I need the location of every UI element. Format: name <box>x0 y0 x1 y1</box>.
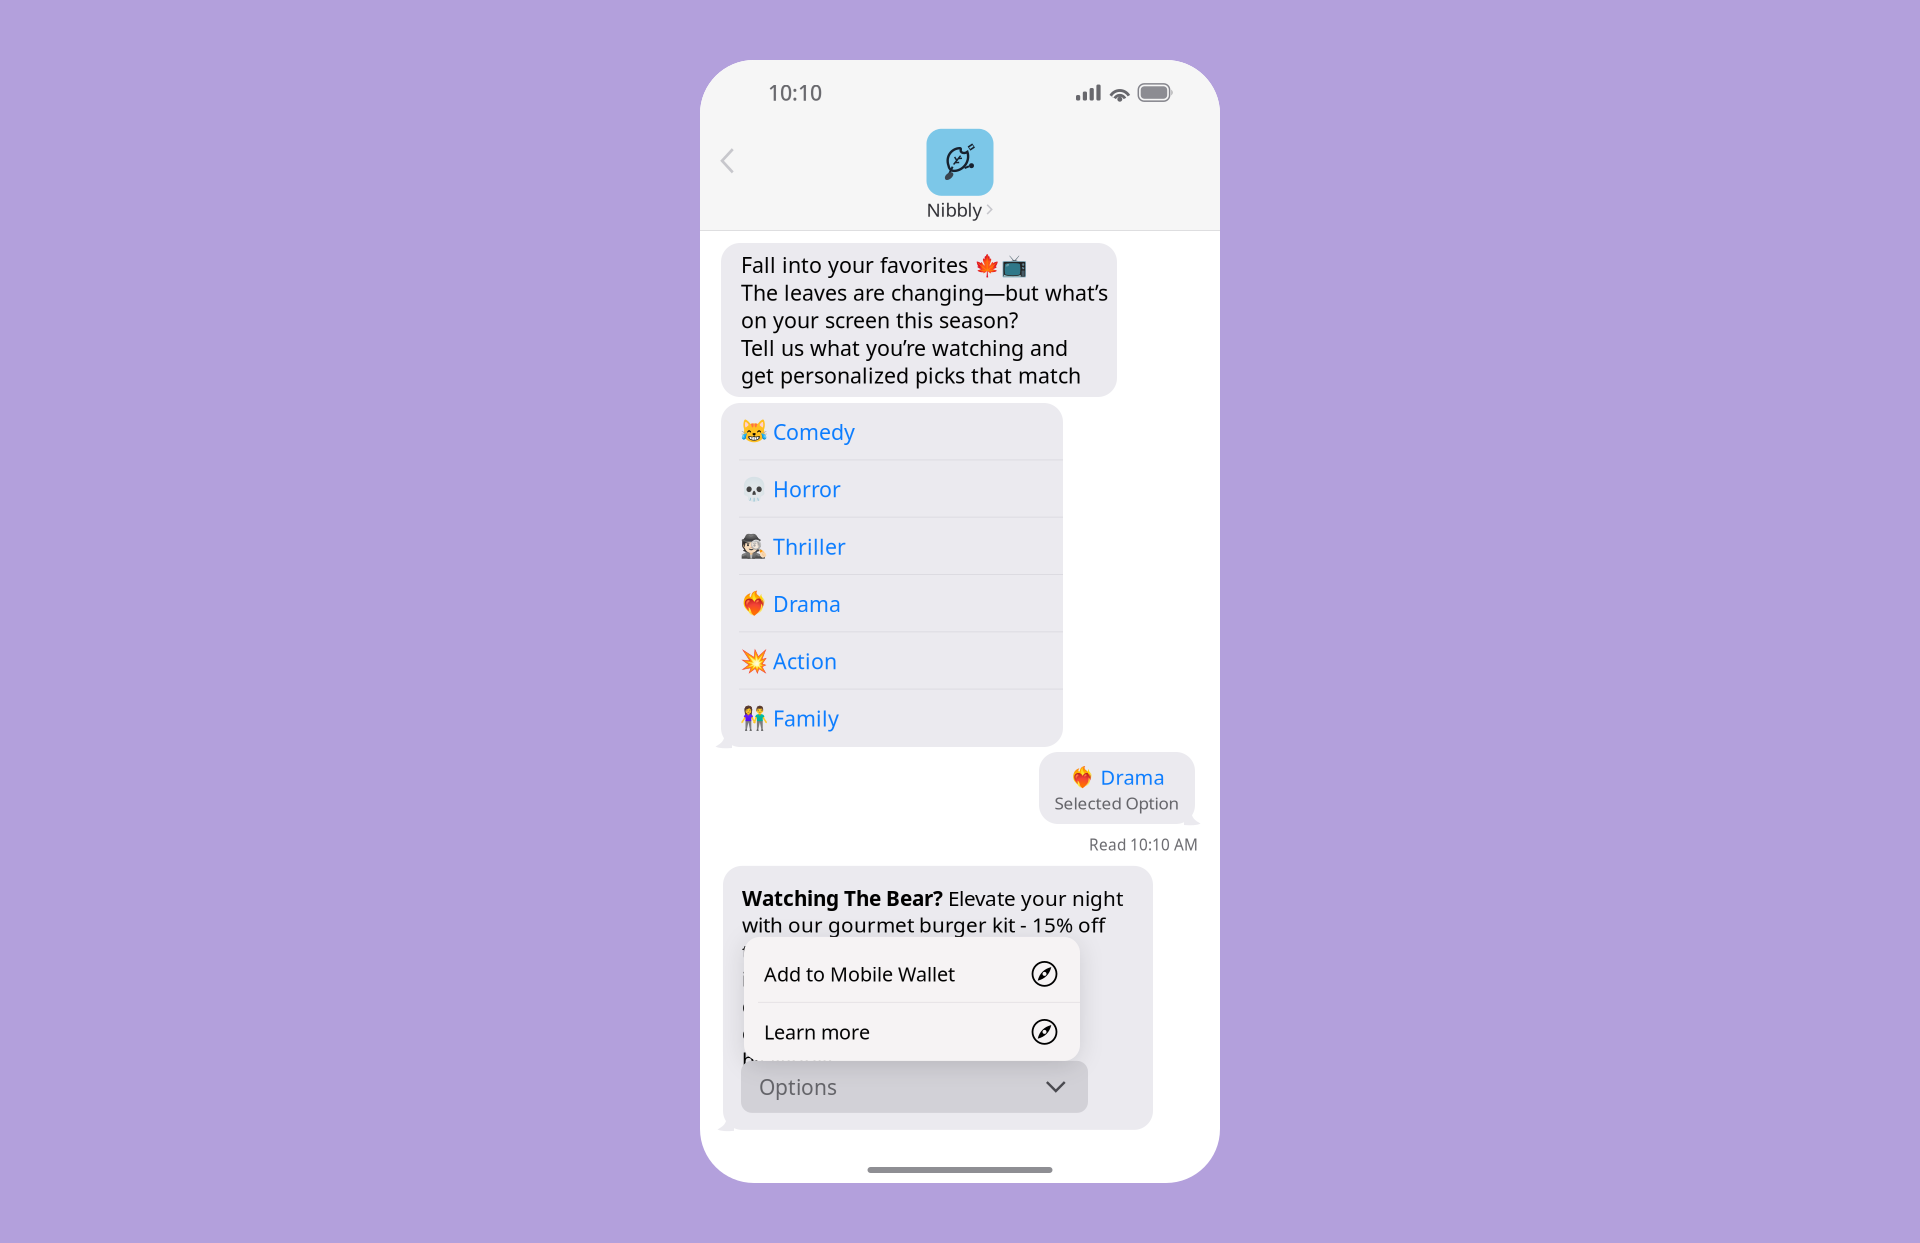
staticText: Watching The Bear? Elevate your night <box>742 884 1123 912</box>
staticText: Family <box>773 704 839 733</box>
staticText: 🕵🏻 <box>740 533 768 560</box>
button[interactable]: Back <box>709 140 745 182</box>
button[interactable]: 😹 <box>721 403 1063 460</box>
staticText: The leaves are changing—but what’s <box>741 278 1108 307</box>
staticText: 😹 <box>740 418 768 445</box>
button[interactable]: ❤️‍🔥 <box>721 575 1063 632</box>
button[interactable]: 💀 <box>721 460 1063 518</box>
staticText: Horror <box>773 474 841 504</box>
staticText: Thriller <box>773 532 846 561</box>
staticText: Comedy <box>773 417 855 446</box>
staticText: ❤️‍🔥 <box>740 590 768 617</box>
staticText: 10:10 <box>768 78 822 107</box>
staticText: with our gourmet burger kit - 15% off <box>742 910 1105 938</box>
staticText: Drama <box>773 589 841 618</box>
button[interactable]: Learn more <box>744 1003 1080 1061</box>
staticText: this weekend. Fresh, chef-curated <box>742 937 1071 965</box>
staticText: Read 10:10 AM <box>1089 834 1198 855</box>
staticText: on your screen this season? <box>741 305 1018 335</box>
staticText: 👫 <box>740 705 768 732</box>
staticText: Selected Option <box>1054 791 1179 815</box>
staticText: by Nibbly. <box>742 1045 838 1073</box>
staticText: door in under 30 minutes. Tap to <box>742 991 1062 1019</box>
staticText: Add to Mobile Wallet <box>764 960 955 987</box>
button[interactable]: 🕵🏻 <box>721 518 1063 575</box>
staticText: Drama <box>1100 763 1164 791</box>
staticText: Tell us what you’re watching and <box>741 333 1068 362</box>
staticText: Action <box>773 646 837 675</box>
staticText: ❤️‍🔥 <box>1069 765 1094 789</box>
staticText: Nibbly <box>926 197 982 222</box>
staticText: ingredients delivered right to your <box>742 964 1076 992</box>
button[interactable]: 💥 <box>721 632 1063 690</box>
staticText: Learn more <box>764 1018 870 1045</box>
staticText: Options <box>759 1073 837 1101</box>
staticText: 💀 <box>740 476 768 502</box>
staticText: get personalized picks that match <box>741 361 1081 390</box>
button[interactable]: Nibbly <box>926 129 993 222</box>
staticText: Fall into your favorites 🍁📺 <box>741 250 1028 279</box>
button[interactable]: 👫 <box>721 690 1063 747</box>
staticText: claim and save on tonight’s dinner <box>742 1018 1076 1046</box>
staticText: 💥 <box>740 648 768 674</box>
button[interactable]: Add to Mobile Wallet <box>744 937 1080 1002</box>
